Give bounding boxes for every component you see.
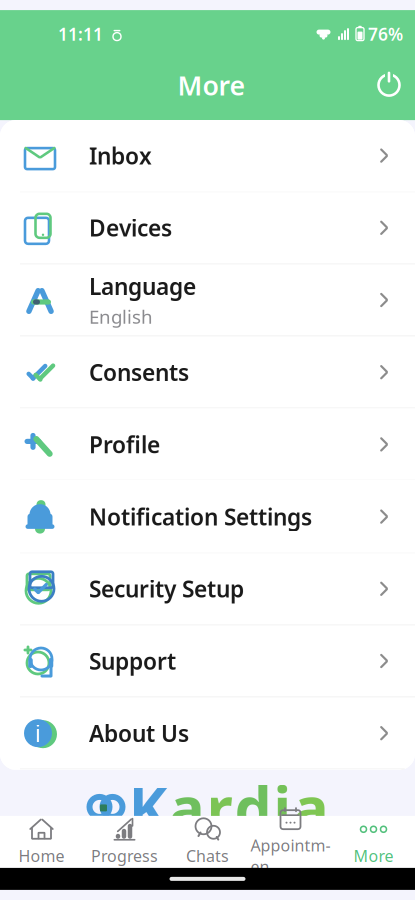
button[interactable]: Chats (166, 816, 249, 868)
staticText: Notification Settings (89, 501, 312, 532)
button[interactable]: Progress (83, 816, 166, 868)
button[interactable]: Inbox (0, 120, 415, 192)
staticText: i (35, 718, 41, 748)
staticText: Support (89, 646, 176, 676)
staticText: a (169, 768, 204, 846)
staticText: 76% (368, 23, 403, 46)
staticText: K (128, 768, 167, 846)
staticText: Security Setup (89, 574, 244, 604)
staticText: Chats (186, 845, 229, 866)
button[interactable]: Log out (363, 63, 415, 107)
button[interactable]: More (332, 816, 415, 868)
staticText: Appointmen… (250, 835, 330, 877)
button[interactable]: Profile (0, 409, 415, 481)
button[interactable]: Language (0, 264, 415, 337)
button[interactable]: Home (0, 816, 83, 868)
button[interactable]: Notification Settings (0, 481, 415, 553)
staticText: d (234, 768, 271, 846)
button[interactable]: i (0, 698, 415, 770)
staticText: Inbox (89, 140, 152, 171)
staticText: More (177, 67, 245, 103)
staticText: 11:11 (58, 23, 103, 46)
staticText: a (293, 768, 328, 846)
staticText: More (353, 845, 393, 866)
staticText: Language (89, 271, 196, 301)
staticText: Profile (89, 429, 160, 459)
button[interactable]: Consents (0, 337, 415, 409)
staticText: Home (18, 845, 64, 866)
staticText: Devices (89, 213, 172, 243)
staticText: i (273, 768, 291, 846)
button[interactable]: Appointmen… (249, 816, 332, 868)
staticText: Progress (91, 845, 158, 866)
button[interactable]: Security Setup (0, 553, 415, 625)
staticText: About Us (89, 718, 189, 748)
staticText: r (206, 768, 232, 846)
button[interactable]: Devices (0, 192, 415, 264)
staticText: Consents (89, 357, 189, 387)
button[interactable]: Support (0, 625, 415, 698)
staticText: English (89, 304, 153, 329)
